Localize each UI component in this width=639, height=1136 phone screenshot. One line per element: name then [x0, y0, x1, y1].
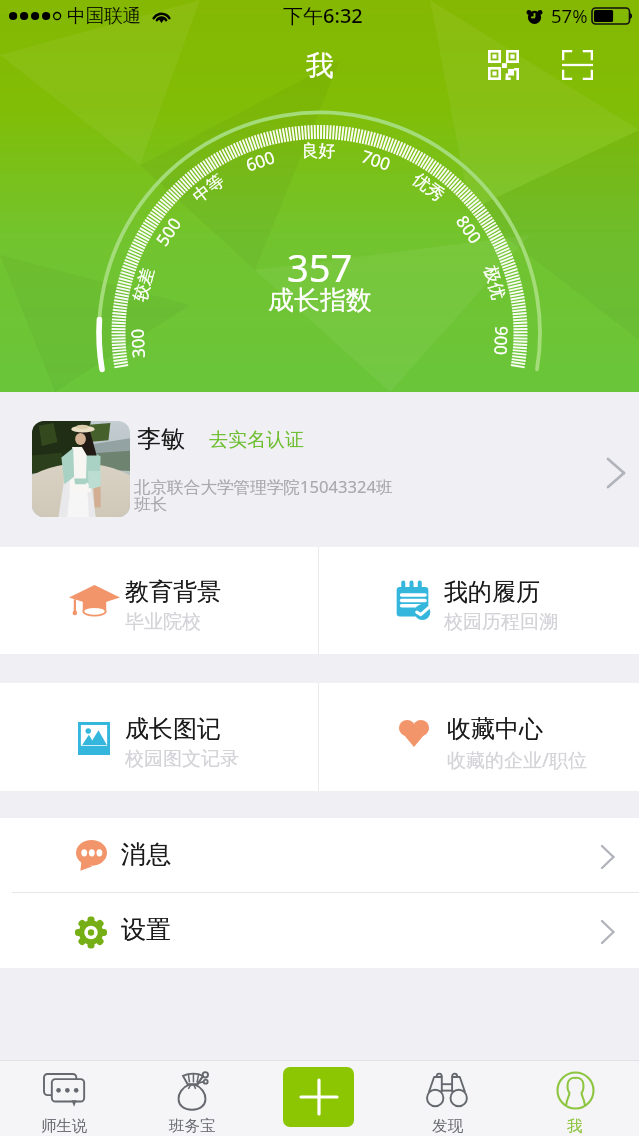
button[interactable]: 收藏中心	[320, 683, 639, 791]
staticText: 成长图记	[125, 714, 221, 744]
staticText: 下午6:32	[283, 2, 363, 29]
button[interactable]: 我的履历	[320, 547, 639, 654]
staticText: 校园图文记录	[125, 747, 239, 771]
staticText: 57%	[551, 3, 588, 28]
button[interactable]: Scan	[556, 44, 598, 86]
staticText: 我	[567, 1116, 583, 1136]
button[interactable]: 成长图记	[0, 683, 318, 791]
staticText: 校园历程回溯	[444, 610, 558, 634]
staticText: 成长图记	[125, 714, 221, 744]
staticText: 李敏	[137, 424, 185, 454]
staticText: 发现	[432, 1116, 463, 1136]
staticText: 班务宝	[169, 1116, 216, 1136]
staticText: 教育背景	[125, 577, 221, 607]
button[interactable]: My QR code	[482, 44, 524, 86]
staticText: 357	[287, 241, 353, 293]
staticText: 我的履历	[444, 577, 540, 607]
staticText: 消息	[121, 839, 171, 870]
button[interactable]: 设置	[0, 893, 639, 967]
staticText: 北京联合大学管理学院15043324班	[134, 475, 393, 498]
button[interactable]: 班务宝	[128, 1060, 256, 1136]
button[interactable]: Add	[283, 1067, 354, 1127]
staticText: 中国联通	[67, 4, 141, 27]
staticText: 成长指数	[268, 284, 372, 317]
staticText: 李敏	[137, 424, 185, 454]
staticText: 设置	[121, 914, 171, 945]
button[interactable]: 我	[511, 1060, 639, 1136]
button[interactable]: 师生说	[0, 1060, 128, 1136]
staticText: 教育背景	[125, 577, 221, 607]
staticText: 收藏中心	[447, 714, 543, 744]
staticText: 毕业院校	[125, 610, 201, 634]
button[interactable]: 发现	[383, 1060, 511, 1136]
staticText: 师生说	[41, 1116, 88, 1136]
staticText: 收藏的企业/职位	[447, 747, 588, 773]
staticText: 消息	[121, 839, 171, 870]
button[interactable]: 消息	[0, 818, 639, 892]
staticText: 班长	[134, 494, 168, 515]
staticText: 设置	[121, 914, 171, 945]
button[interactable]: 李敏	[0, 392, 639, 547]
button[interactable]: 教育背景	[0, 547, 318, 654]
staticText: 我的履历	[444, 577, 540, 607]
staticText: 我	[306, 48, 334, 83]
staticText: 去实名认证	[209, 428, 304, 452]
staticText: 收藏中心	[447, 714, 543, 744]
